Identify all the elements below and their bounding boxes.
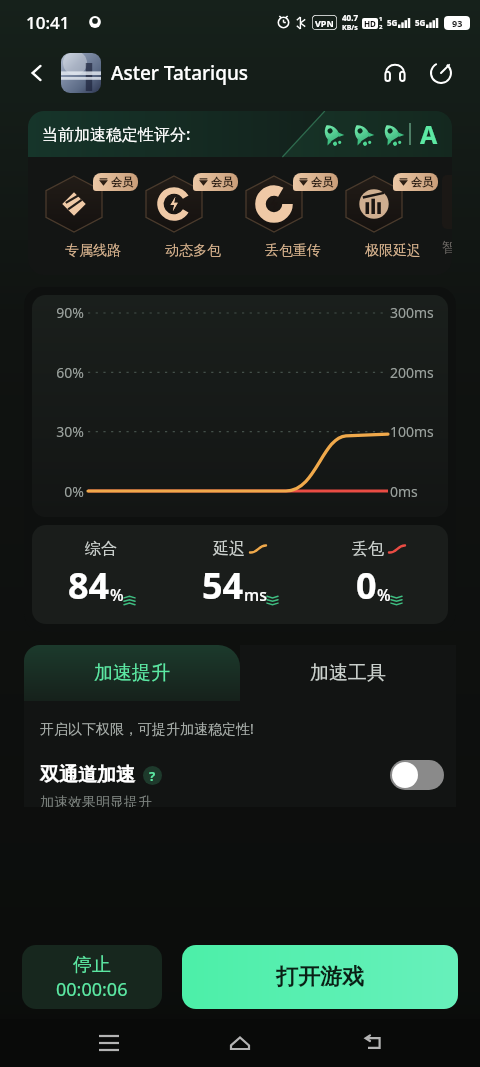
staticText: 当前加速稳定性评分:: [42, 123, 191, 145]
staticText: 40.7: [342, 12, 358, 23]
staticText: 专属线路: [65, 242, 121, 260]
staticText: VPN: [315, 17, 334, 29]
staticText: 100ms: [390, 422, 434, 441]
staticText: 极限延迟: [365, 242, 421, 260]
button[interactable]: 会员: [142, 173, 242, 260]
staticText: 30%: [46, 422, 84, 441]
staticText: 5G: [387, 17, 398, 28]
staticText: 延迟: [213, 539, 245, 559]
staticText: 丢包: [352, 539, 384, 559]
button[interactable]: Help: [143, 766, 162, 785]
staticText: 0%: [46, 482, 84, 501]
staticText: KB/s: [342, 23, 358, 33]
staticText: 加速提升: [94, 661, 170, 685]
staticText: 停止: [73, 953, 111, 977]
button[interactable]: Headset: [376, 54, 414, 92]
button[interactable]: 打开游戏: [182, 945, 458, 1009]
staticText: %: [377, 584, 391, 606]
button[interactable]: [390, 760, 444, 790]
button[interactable]: Back: [349, 1020, 395, 1066]
button[interactable]: 会员: [342, 173, 442, 260]
staticText: 加速工具: [310, 661, 386, 685]
button[interactable]: Recents: [86, 1020, 132, 1066]
staticText: 5G: [415, 17, 426, 28]
staticText: 0: [356, 561, 377, 610]
staticText: 54: [202, 561, 244, 610]
staticText: 会员: [111, 175, 133, 189]
staticText: A: [420, 117, 438, 151]
staticText: 会员: [211, 175, 233, 189]
staticText: 开启以下权限，可提升加速稳定性!: [40, 719, 254, 738]
staticText: 93: [452, 17, 463, 29]
button[interactable]: Back: [20, 56, 54, 90]
button[interactable]: 会员: [242, 173, 342, 260]
staticText: 84: [68, 561, 110, 610]
button[interactable]: 加速提升: [24, 645, 240, 701]
staticText: Aster Tatariqus: [111, 60, 376, 86]
staticText: HD: [364, 18, 376, 29]
button[interactable]: 停止: [22, 945, 162, 1009]
staticText: 双通道加速: [40, 763, 135, 787]
staticText: 会员: [411, 175, 433, 189]
staticText: 10:41: [26, 11, 70, 34]
staticText: ?: [149, 767, 156, 785]
button[interactable]: 加速工具: [240, 645, 456, 701]
button[interactable]: Home: [217, 1020, 263, 1066]
staticText: 1: [379, 15, 383, 23]
staticText: 60%: [46, 363, 84, 382]
staticText: 动态多包: [165, 242, 221, 260]
staticText: 200ms: [390, 363, 434, 382]
staticText: %: [110, 584, 124, 606]
staticText: 300ms: [390, 303, 434, 322]
staticText: 加速效果明显提升: [40, 794, 152, 807]
button[interactable]: Refresh: [422, 54, 460, 92]
staticText: 打开游戏: [276, 963, 364, 991]
staticText: 会员: [311, 175, 333, 189]
staticText: 丢包重传: [265, 242, 321, 260]
staticText: 智: [442, 239, 452, 257]
staticText: 综合: [85, 539, 117, 559]
staticText: 2: [379, 23, 383, 31]
staticText: ms: [244, 584, 267, 606]
staticText: 0ms: [390, 482, 418, 501]
button[interactable]: 会员: [42, 173, 142, 260]
staticText: 90%: [46, 303, 84, 322]
staticText: 00:00:06: [56, 977, 128, 1002]
